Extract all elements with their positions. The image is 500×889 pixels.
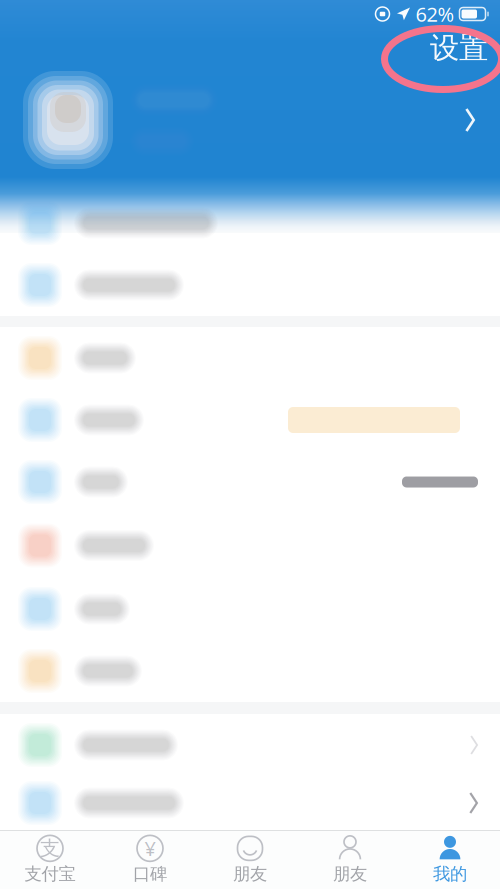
staticText: 支 [40,836,60,861]
staticText: 口碑 [133,863,167,885]
staticText: 62% [415,1,454,27]
button[interactable] [0,389,500,451]
button[interactable]: 支 [0,830,100,889]
staticText: 支付宝 [24,863,75,885]
button[interactable] [0,714,500,776]
staticText: 朋友 [233,863,267,885]
button[interactable]: 朋友 [200,830,300,889]
button[interactable] [0,513,500,578]
button[interactable] [0,451,500,513]
button[interactable] [0,192,500,254]
button[interactable]: 我的 [400,830,500,889]
staticText: ¥ [144,835,155,862]
staticText: 我的 [433,863,467,885]
button[interactable]: ¥ [100,830,200,889]
button[interactable] [0,640,500,702]
button[interactable] [0,78,500,162]
staticText: 设置 [430,30,488,66]
button[interactable] [0,776,500,830]
button[interactable] [0,254,500,316]
button[interactable]: 朋友 [300,830,400,889]
staticText: 朋友 [333,863,367,885]
button[interactable]: 设置 [420,24,498,72]
button[interactable] [0,327,500,389]
button[interactable] [0,578,500,640]
